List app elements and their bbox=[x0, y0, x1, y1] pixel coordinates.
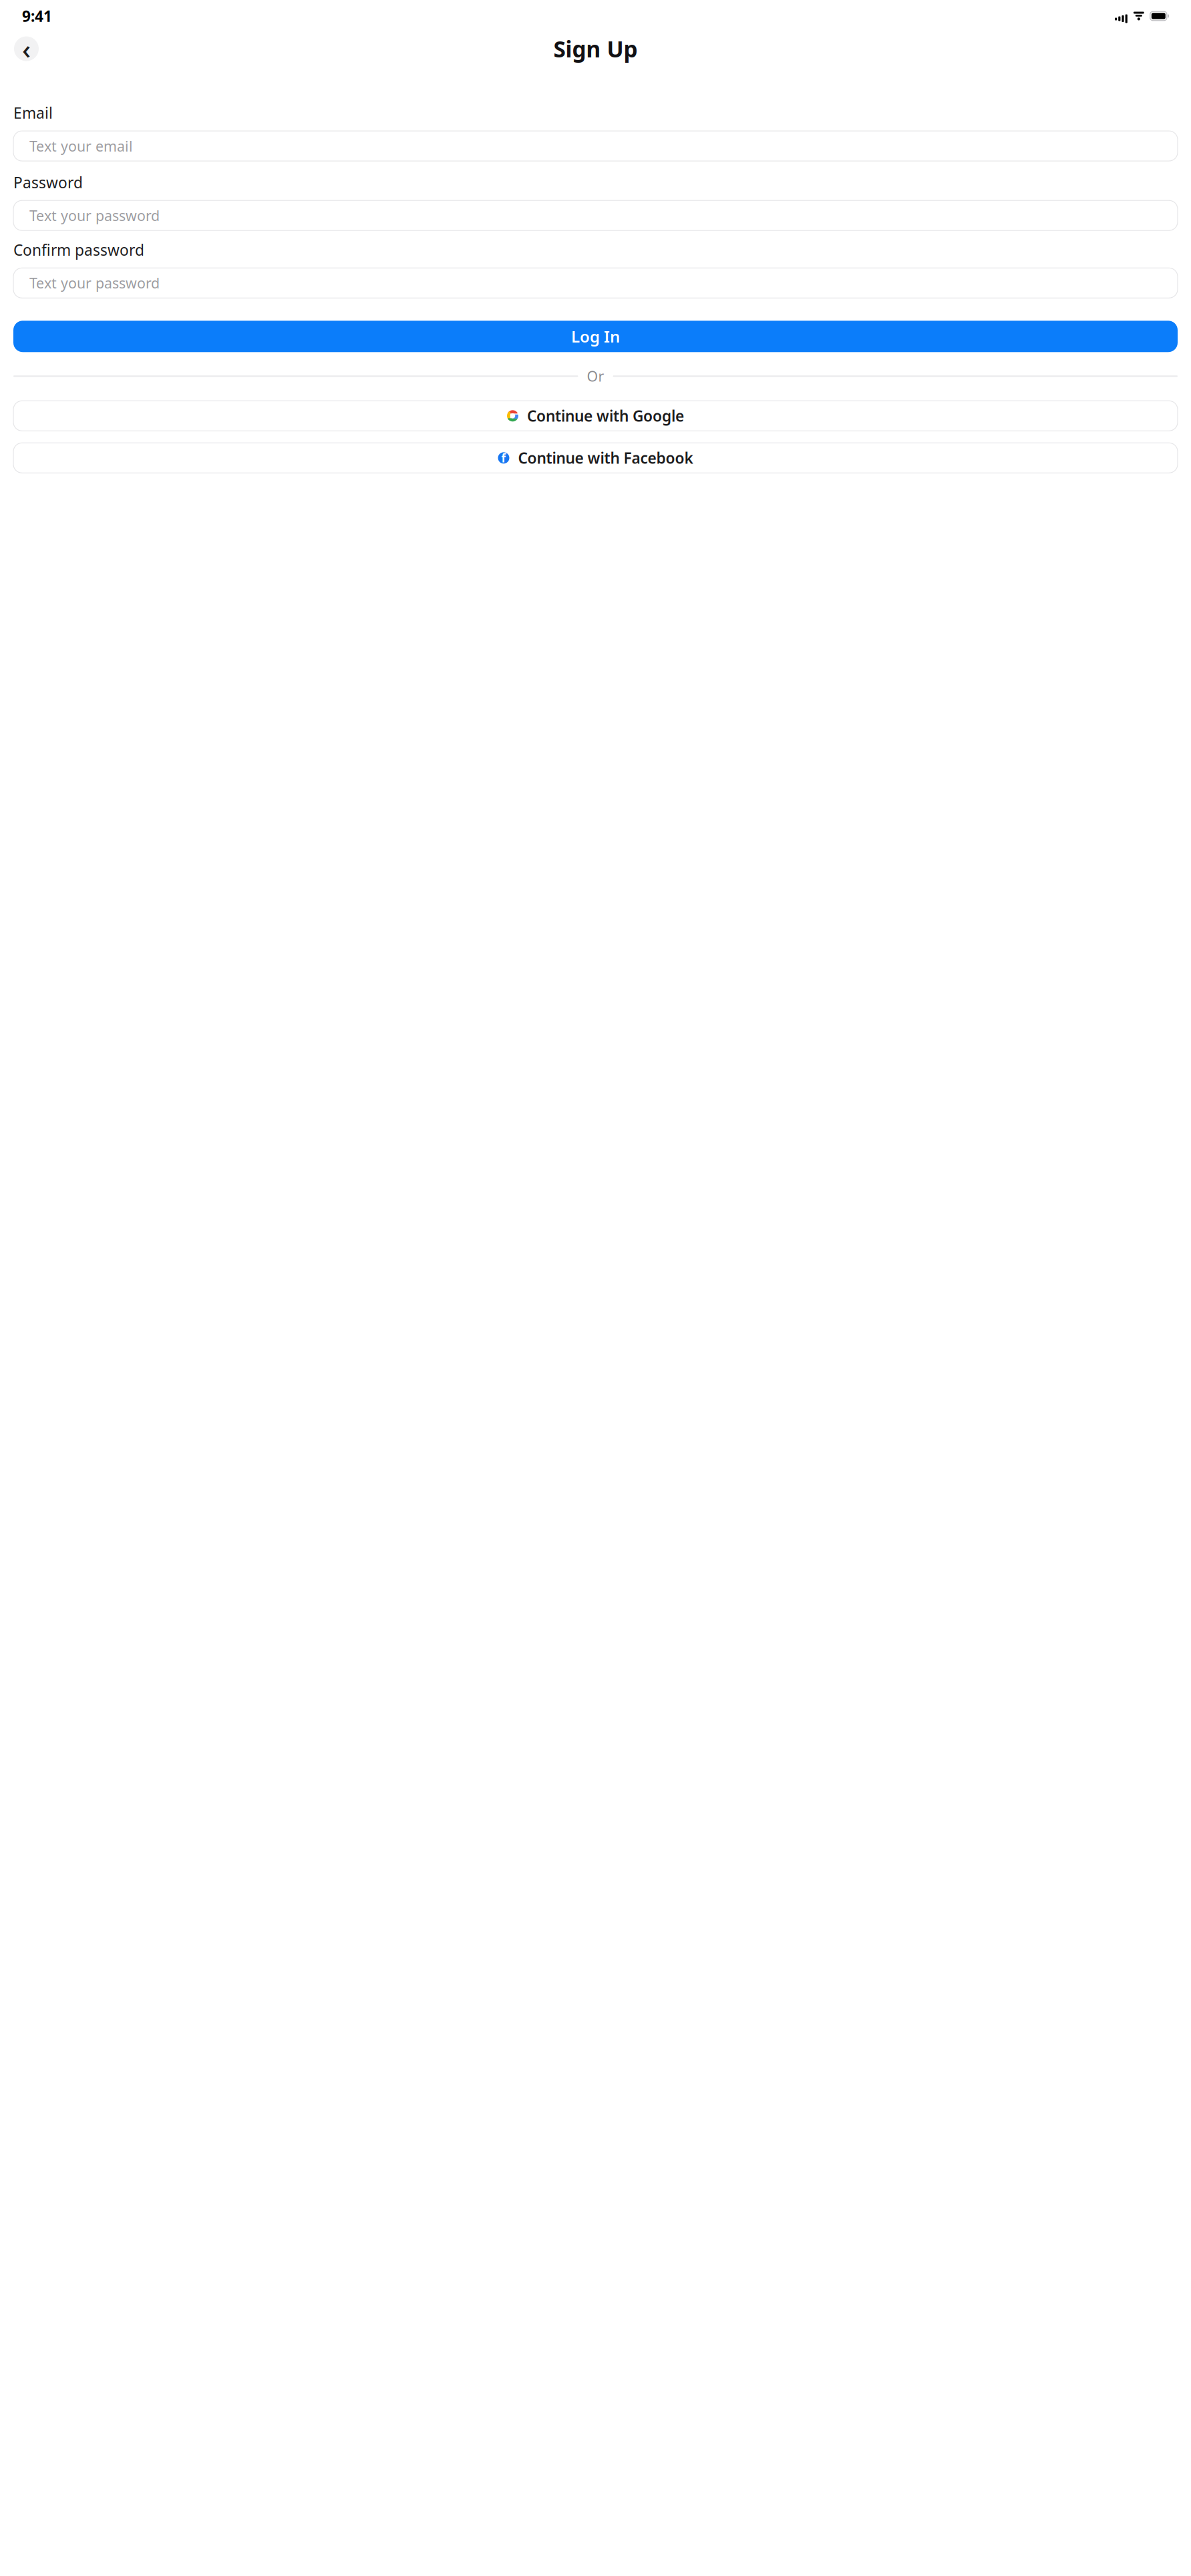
staticText: Text your email bbox=[29, 136, 133, 155]
staticText: Sign Up bbox=[553, 34, 638, 64]
button[interactable]: Text your email bbox=[13, 131, 1178, 161]
staticText: f bbox=[501, 450, 506, 466]
button[interactable]: Back bbox=[14, 36, 39, 61]
button[interactable]: f bbox=[13, 443, 1178, 473]
staticText: Or bbox=[587, 367, 604, 386]
staticText: Text your password bbox=[29, 273, 160, 292]
staticText: Confirm password bbox=[13, 240, 144, 260]
button[interactable]: Text your password bbox=[13, 200, 1178, 230]
staticText: Continue with Facebook bbox=[518, 448, 693, 468]
button[interactable]: Continue with Google bbox=[13, 401, 1178, 431]
button[interactable]: Log In bbox=[13, 321, 1178, 352]
button[interactable]: Text your password bbox=[13, 268, 1178, 298]
staticText: Password bbox=[13, 172, 83, 192]
staticText: Text your password bbox=[29, 206, 160, 225]
staticText: 9:41 bbox=[22, 6, 52, 26]
staticText: ‹ bbox=[22, 31, 31, 66]
staticText: Email bbox=[13, 103, 53, 123]
staticText: Log In bbox=[571, 326, 620, 347]
staticText: Continue with Google bbox=[527, 406, 684, 426]
